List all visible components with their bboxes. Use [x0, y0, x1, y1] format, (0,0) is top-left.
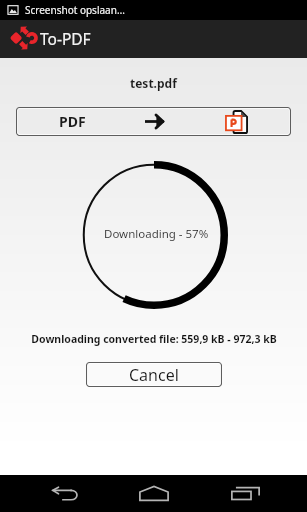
- staticText: Cancel: [129, 364, 179, 386]
- staticText: To-PDF: [40, 28, 91, 49]
- staticText: PDF: [59, 112, 86, 131]
- button[interactable]: Back: [32, 475, 92, 512]
- staticText: Downloading converted file: 559,9 kB - 9…: [31, 332, 277, 346]
- staticText: Screenshot opslaan…: [25, 3, 125, 17]
- button[interactable]: PDF: [16, 107, 291, 136]
- button[interactable]: Recent apps: [215, 475, 275, 512]
- staticText: test.pdf: [130, 75, 177, 91]
- button[interactable]: Home: [124, 475, 184, 512]
- button[interactable]: Cancel: [86, 362, 222, 387]
- staticText: Downloading - 57%: [104, 226, 209, 242]
